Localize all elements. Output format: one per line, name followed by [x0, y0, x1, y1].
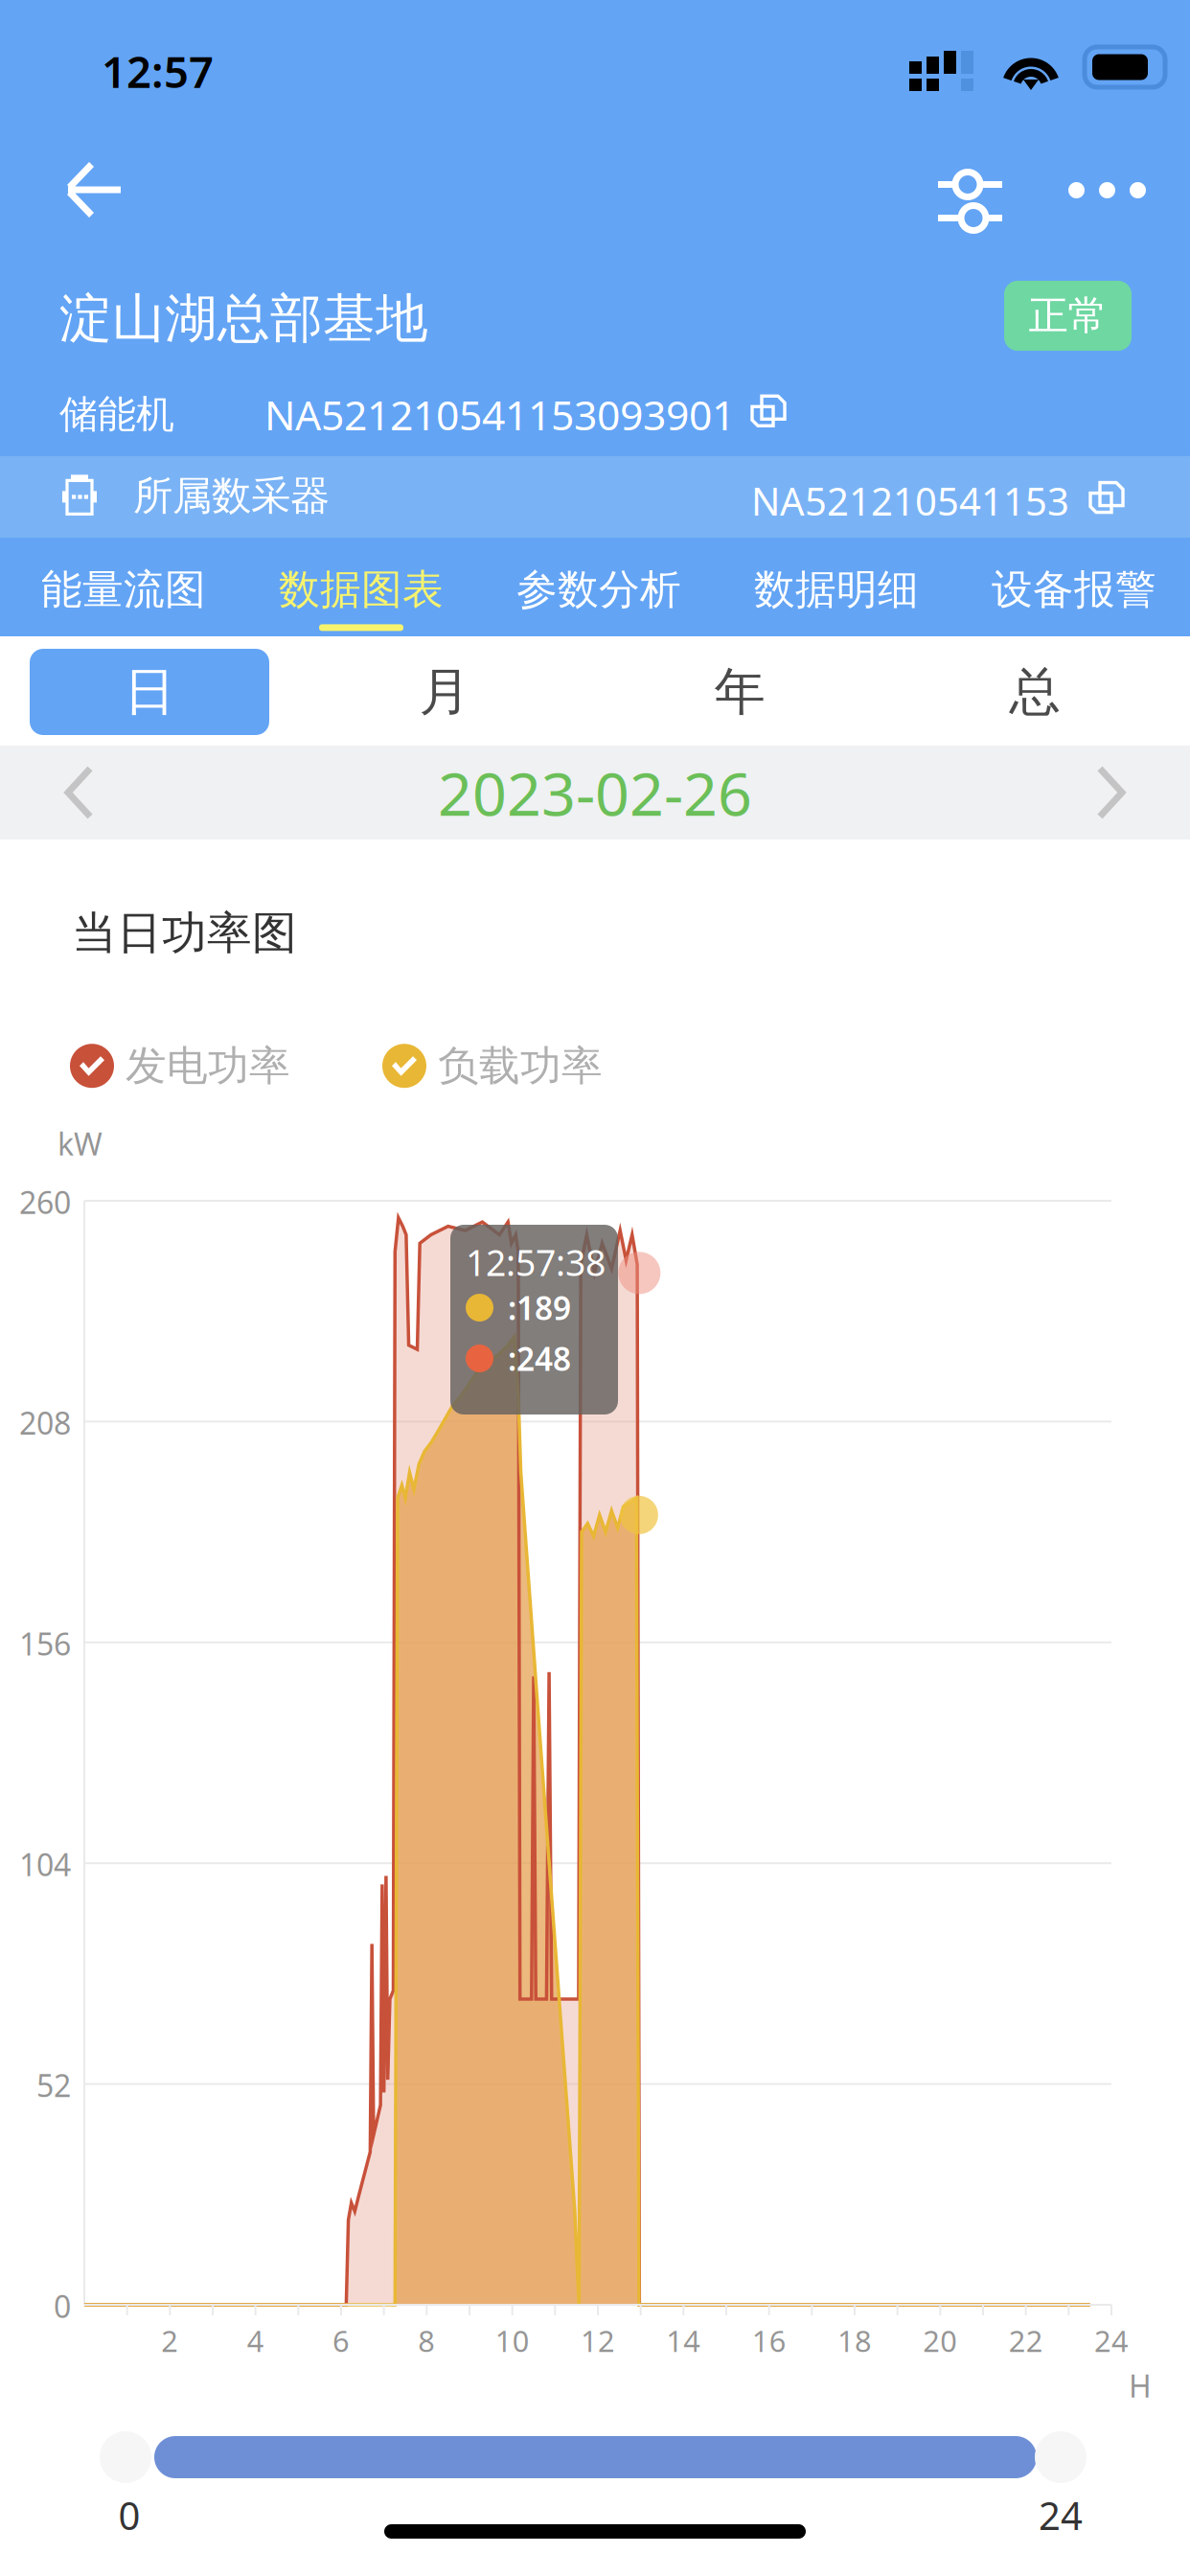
staticText: 14 [666, 2321, 701, 2360]
button[interactable]: 前一天 [34, 766, 124, 819]
staticText: NA521210541153 [751, 475, 1069, 526]
staticText: 20 [923, 2321, 957, 2360]
staticText: 16 [752, 2321, 786, 2360]
button[interactable]: 日 [2, 649, 297, 735]
staticText: 总 [1009, 660, 1060, 723]
staticText: 当日功率图 [72, 906, 297, 961]
button[interactable]: 返回 [47, 139, 137, 241]
button[interactable]: 筛选 [921, 151, 1019, 251]
button[interactable]: 更多 [1051, 146, 1163, 235]
staticText: kW [57, 1123, 103, 1164]
staticText: 参数分析 [516, 564, 681, 615]
button[interactable]: 数据明细 [718, 538, 955, 636]
button[interactable]: 能量流图 [5, 538, 242, 636]
button[interactable]: 数据图表 [242, 538, 480, 636]
staticText: 10 [495, 2321, 530, 2360]
staticText: 2023-02-26 [438, 753, 752, 832]
staticText: 数据明细 [754, 564, 919, 615]
staticText: 能量流图 [41, 564, 206, 615]
staticText: H [1129, 2365, 1152, 2406]
button[interactable]: 复制数采器编号 [1087, 481, 1127, 521]
staticText: 年 [714, 660, 765, 723]
staticText: 24 [1039, 2490, 1083, 2541]
button[interactable]: 设备报警 [955, 538, 1190, 636]
staticText: 4 [247, 2321, 264, 2360]
staticText: 设备报警 [992, 564, 1156, 615]
staticText: 数据图表 [279, 564, 444, 615]
staticText: 6 [332, 2321, 350, 2360]
staticText: 12 [581, 2321, 615, 2360]
staticText: NA521210541153093901 [264, 387, 735, 442]
staticText: 260 [19, 1182, 71, 1222]
staticText: 12:57:38 [466, 1238, 606, 1286]
staticText: 12:57 [102, 42, 214, 100]
staticText: 208 [19, 1402, 71, 1443]
button[interactable]: 总 [887, 649, 1182, 735]
staticText: 8 [418, 2321, 435, 2360]
staticText: 所属数采器 [133, 471, 330, 520]
staticText: 储能机 [59, 391, 174, 438]
staticText: 22 [1009, 2321, 1043, 2360]
staticText: 日 [124, 660, 175, 723]
staticText: 正常 [1029, 291, 1107, 341]
staticText: 负载功率 [438, 1041, 603, 1091]
staticText: 24 [1094, 2321, 1129, 2360]
staticText: :189 [508, 1286, 571, 1329]
staticText: 发电功率 [126, 1041, 290, 1091]
button[interactable]: 参数分析 [480, 538, 718, 636]
staticText: 2 [161, 2321, 179, 2360]
button[interactable]: 月 [297, 649, 592, 735]
staticText: 淀山湖总部基地 [59, 287, 428, 351]
button[interactable]: 后一天 [1066, 766, 1156, 819]
staticText: 104 [19, 1844, 71, 1885]
staticText: 0 [118, 2490, 140, 2541]
button[interactable]: 正常 [1004, 281, 1132, 351]
button[interactable]: 复制编号 [748, 394, 789, 434]
staticText: 156 [19, 1623, 71, 1664]
staticText: 0 [54, 2286, 71, 2326]
staticText: 18 [837, 2321, 872, 2360]
staticText: 月 [419, 660, 470, 723]
staticText: :248 [508, 1337, 571, 1380]
staticText: 52 [36, 2065, 71, 2106]
button[interactable]: 年 [592, 649, 887, 735]
